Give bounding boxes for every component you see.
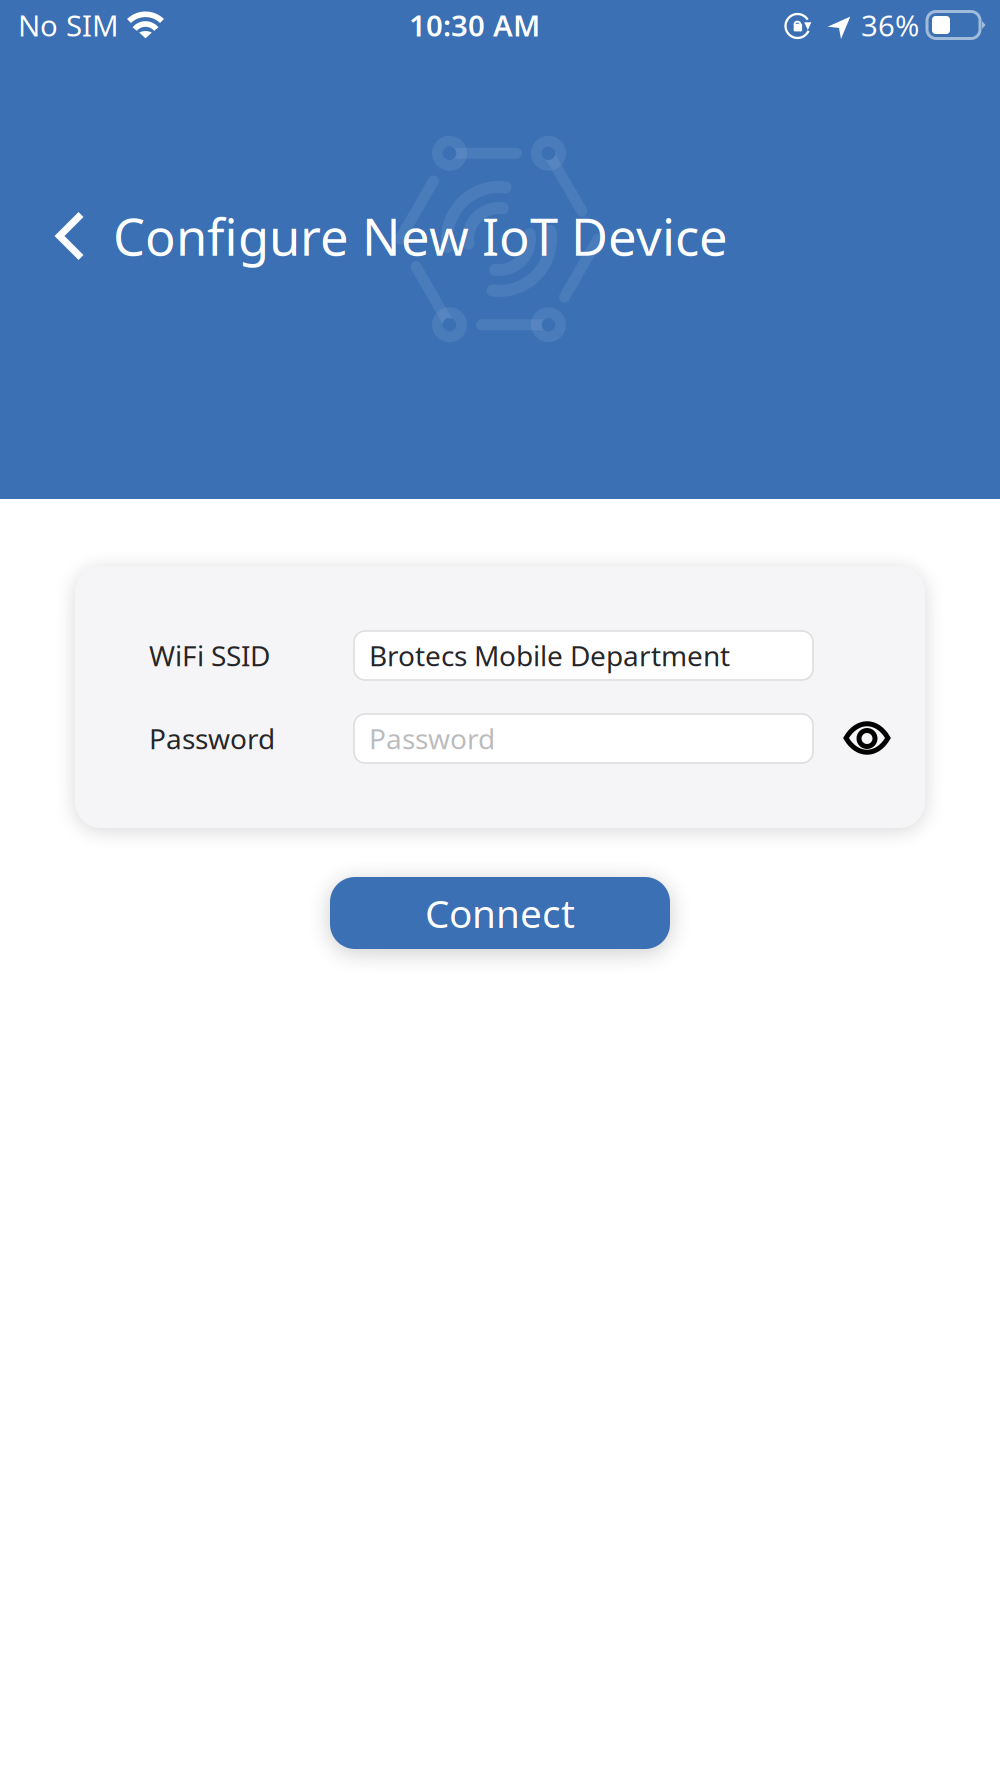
button[interactable]: Brotecs Mobile Department [354,631,813,680]
button[interactable]: Back [0,196,113,276]
staticText: Configure New IoT Device [113,202,728,270]
button[interactable]: Connect [330,877,670,949]
button[interactable]: Password [354,714,813,763]
staticText: 10:30 AM [409,5,540,44]
staticText: WiFi SSID [149,637,270,674]
staticText: Connect [425,887,575,939]
staticText: 36% [861,5,919,44]
staticText: Brotecs Mobile Department [369,637,730,674]
button[interactable]: Show password [813,714,896,763]
staticText: Password [149,720,275,757]
staticText: Password [369,720,495,757]
staticText: No SIM [18,5,119,44]
